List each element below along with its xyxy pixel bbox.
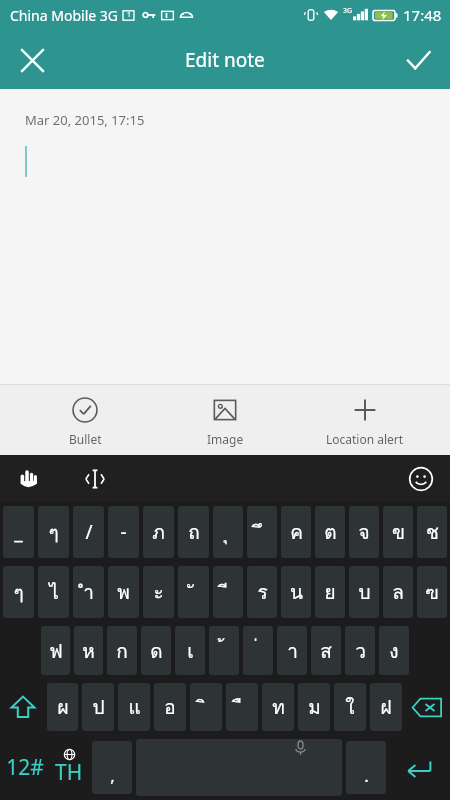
button[interactable]: ย	[315, 566, 345, 618]
button[interactable]: ่	[243, 626, 273, 675]
button[interactable]: ว	[345, 626, 375, 675]
button[interactable]: ๆ	[38, 506, 69, 558]
staticText: ๆ	[13, 577, 24, 607]
button[interactable]: Image	[170, 385, 280, 455]
button[interactable]: ก	[107, 626, 137, 675]
button[interactable]: Enter	[390, 739, 447, 796]
button[interactable]: ฝ	[370, 683, 402, 731]
button[interactable]: ด	[141, 626, 171, 675]
button[interactable]: ฟ	[41, 626, 70, 675]
button[interactable]: พ	[108, 566, 139, 618]
button[interactable]: ผ	[47, 683, 78, 731]
staticText: ง	[389, 636, 399, 666]
button[interactable]: Cursor control	[78, 462, 112, 496]
staticText: ใ	[345, 692, 355, 722]
button[interactable]: ช	[417, 506, 447, 558]
button[interactable]: ี	[213, 566, 243, 618]
button[interactable]: ิ	[190, 683, 222, 731]
button[interactable]: .	[346, 741, 386, 794]
button[interactable]: ใ	[334, 683, 366, 731]
staticText: ย	[324, 577, 336, 607]
button[interactable]: ภ	[143, 506, 174, 558]
button[interactable]: Save	[394, 36, 442, 84]
button[interactable]: ง	[379, 626, 409, 675]
button[interactable]: ฃ	[417, 566, 447, 618]
button[interactable]: ถ	[178, 506, 209, 558]
staticText: น	[290, 577, 303, 607]
staticText: ด	[150, 636, 163, 666]
button[interactable]: /	[73, 506, 104, 558]
staticText: 1	[127, 10, 132, 20]
staticText: China Mobile 3G	[10, 6, 118, 25]
button[interactable]: ร	[247, 566, 277, 618]
staticText: ล	[392, 577, 404, 607]
staticText: Mar 20, 2015, 17:15	[25, 111, 145, 129]
button[interactable]: ไ	[38, 566, 69, 618]
button[interactable]: ข	[383, 506, 413, 558]
staticText: ไ	[49, 577, 59, 607]
staticText: 17:48	[403, 5, 442, 25]
button[interactable]: Mar 20, 2015, 17:15	[0, 89, 450, 384]
staticText: -	[120, 519, 127, 545]
staticText: ช	[426, 517, 439, 547]
button[interactable]: TH	[49, 738, 89, 797]
button[interactable]: จ	[349, 506, 379, 558]
staticText: แ	[128, 692, 141, 722]
staticText: ม	[308, 692, 321, 722]
button[interactable]: Backspace	[404, 679, 449, 735]
staticText: /	[85, 519, 93, 545]
staticText: ป	[92, 692, 105, 722]
button[interactable]: ล	[383, 566, 413, 618]
staticText: ภ	[152, 517, 165, 547]
button[interactable]: า	[277, 626, 307, 675]
button[interactable]: ต	[315, 506, 345, 558]
button[interactable]: แ	[118, 683, 150, 731]
button[interactable]: ค	[281, 506, 311, 558]
button[interactable]: ำ	[73, 566, 104, 618]
button[interactable]: เ	[175, 626, 205, 675]
staticText: ถ	[188, 517, 200, 547]
button[interactable]: ื	[226, 683, 258, 731]
button[interactable]: ้	[209, 626, 239, 675]
staticText: พ	[117, 577, 130, 607]
staticText: ๆ	[48, 517, 59, 547]
button[interactable]: ุ	[213, 506, 243, 558]
button[interactable]: ส	[311, 626, 341, 675]
button[interactable]: ท	[262, 683, 294, 731]
button[interactable]: -	[108, 506, 139, 558]
button[interactable]: Shift	[1, 679, 45, 735]
button[interactable]: ป	[82, 683, 114, 731]
staticText: ร	[257, 577, 268, 607]
staticText: ฟ	[49, 636, 63, 666]
button[interactable]: ึ	[247, 506, 277, 558]
staticText: Location alert	[326, 431, 404, 447]
button[interactable]: ะ	[143, 566, 174, 618]
staticText: Image	[207, 431, 244, 447]
button[interactable]: ,	[92, 741, 132, 794]
button[interactable]: _	[3, 506, 34, 558]
staticText: 12#	[6, 753, 44, 782]
button[interactable]: Location alert	[310, 385, 420, 455]
button[interactable]: ม	[298, 683, 330, 731]
button[interactable]: ห	[74, 626, 103, 675]
button[interactable]: Handwriting	[12, 462, 46, 496]
button[interactable]: Emoji	[404, 462, 438, 496]
button[interactable]: Bullet	[30, 385, 140, 455]
button[interactable]: อ	[154, 683, 186, 731]
button[interactable]: ๆ	[3, 566, 34, 618]
button[interactable]: 12#	[3, 741, 46, 794]
staticText: TH	[55, 758, 83, 787]
button[interactable]: Close	[8, 36, 56, 84]
staticText: ส	[320, 636, 332, 666]
button[interactable]: น	[281, 566, 311, 618]
staticText: 3G	[343, 6, 353, 16]
button[interactable]: Space	[136, 739, 342, 796]
staticText: เ	[187, 636, 194, 666]
staticText: ต	[324, 517, 337, 547]
staticText: ข	[392, 517, 405, 547]
button[interactable]: ั	[178, 566, 209, 618]
button[interactable]: บ	[349, 566, 379, 618]
staticText: บ	[358, 577, 371, 607]
staticText: ค	[290, 517, 303, 547]
staticText: ะ	[153, 577, 164, 607]
